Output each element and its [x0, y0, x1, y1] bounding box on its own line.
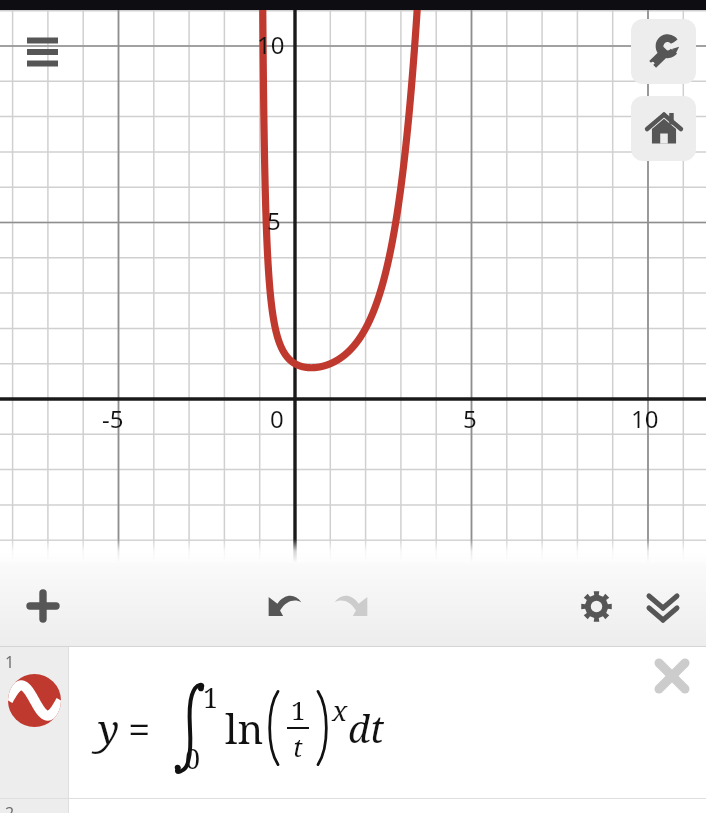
staticText: t: [293, 729, 303, 764]
button[interactable]: Tools: [631, 19, 696, 84]
button[interactable]: Delete expression: [648, 652, 696, 700]
staticText: 2: [5, 802, 15, 813]
staticText: 10: [631, 402, 659, 435]
button[interactable]: Add expression: [19, 582, 67, 630]
staticText: 0: [270, 402, 284, 435]
staticText: 5: [463, 402, 477, 435]
button[interactable]: Home: [631, 96, 696, 161]
staticText: x: [332, 691, 348, 729]
button[interactable]: Curve colour: [8, 674, 61, 727]
staticText: 10: [257, 28, 285, 61]
staticText: -5: [102, 402, 124, 435]
button[interactable]: Settings: [572, 582, 620, 630]
staticText: 5: [267, 204, 281, 237]
button[interactable]: Menu: [18, 27, 66, 75]
staticText: 1: [203, 679, 219, 716]
staticText: y: [98, 701, 120, 755]
button[interactable]: Redo: [327, 582, 375, 630]
staticText: 1: [291, 692, 306, 727]
staticText: =: [128, 701, 151, 755]
staticText: 0: [185, 740, 201, 777]
staticText: ln: [225, 701, 264, 755]
staticText: 1: [5, 651, 15, 673]
button[interactable]: Collapse panel: [639, 582, 687, 630]
staticText: dt: [348, 702, 384, 754]
button[interactable]: Undo: [261, 582, 309, 630]
